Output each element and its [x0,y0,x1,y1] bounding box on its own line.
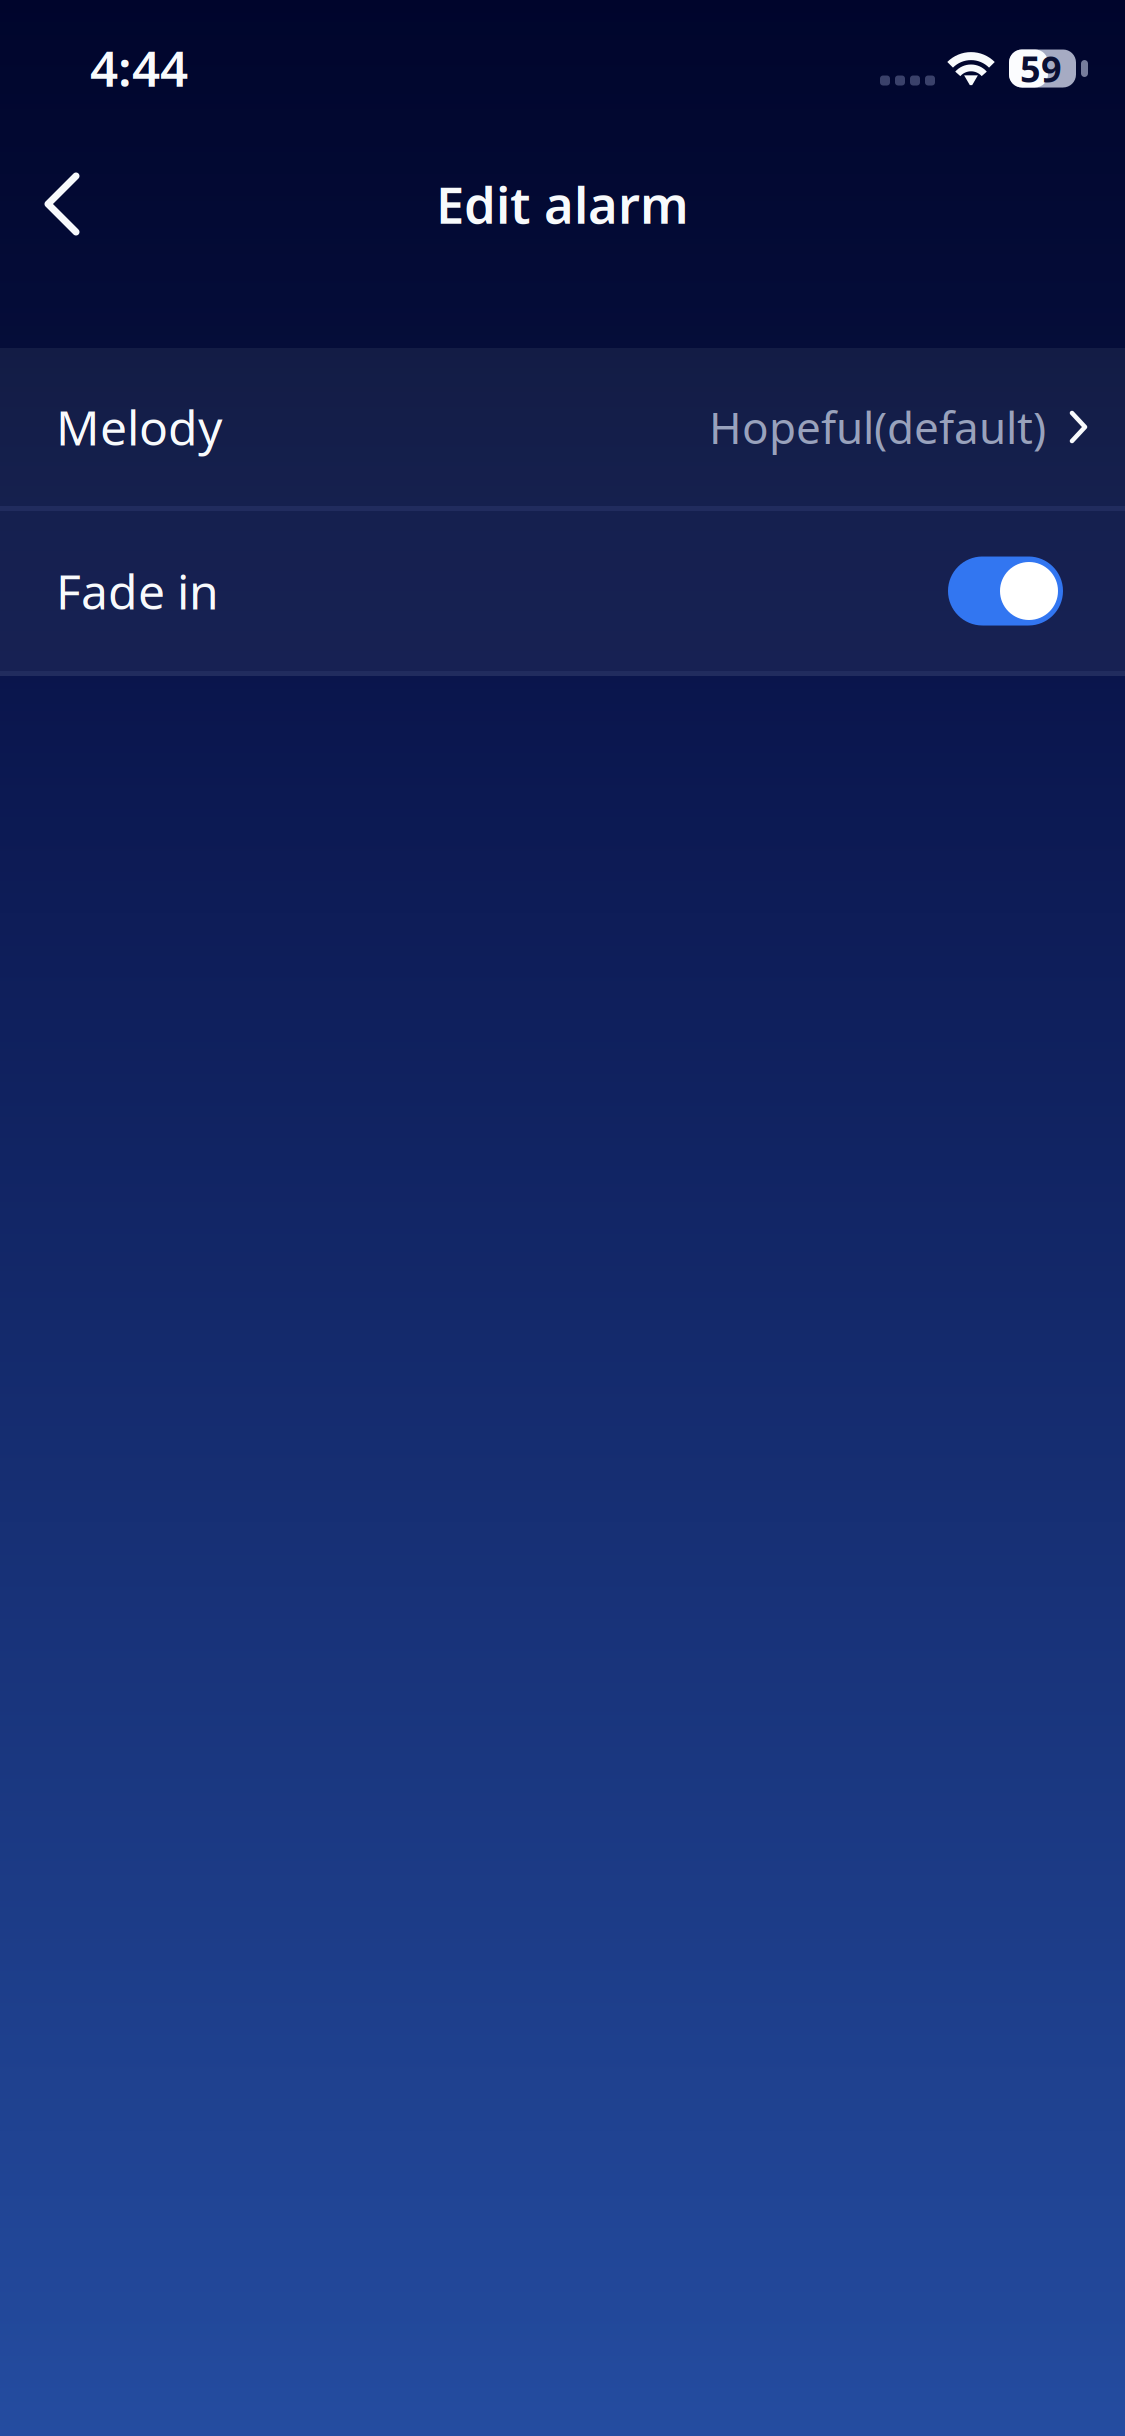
button[interactable]: Fade in [948,556,1063,625]
staticText: Fade in [56,559,219,623]
staticText: Edit alarm [436,170,689,238]
staticText: Hopeful(default) [709,398,1046,456]
staticText: 4:44 [90,35,188,100]
staticText: Melody [56,395,222,459]
button[interactable]: Back [18,146,106,262]
staticText: 59 [1020,45,1062,92]
button[interactable]: Melody [0,348,1125,506]
